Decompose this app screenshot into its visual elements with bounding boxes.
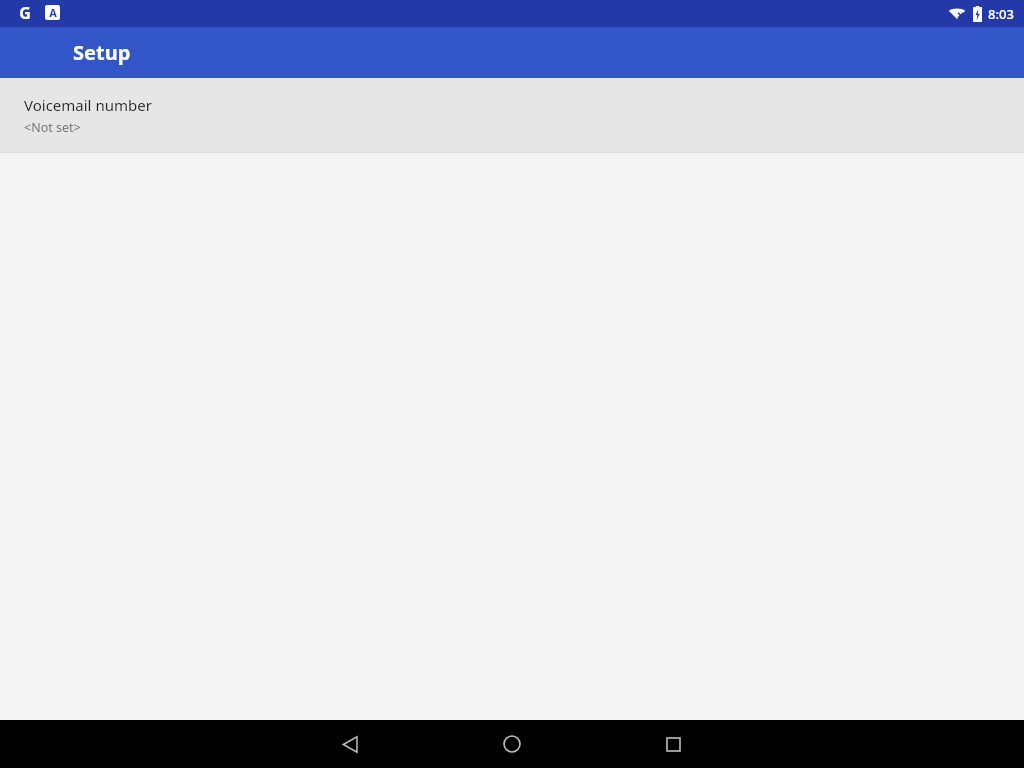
button[interactable]: Recent apps [649,720,697,768]
staticText: G [19,2,31,20]
staticText: Setup [73,39,131,66]
other: Wi-Fi disconnected [948,7,966,21]
staticText: <Not set> [24,119,81,136]
button[interactable]: Voicemail number [0,78,1024,153]
staticText: 8:03 [988,5,1014,23]
staticText: Voicemail number [24,95,152,115]
button[interactable]: Back [326,720,374,768]
button[interactable]: Home [488,720,536,768]
staticText: A [49,5,57,20]
other: Battery charging [973,6,982,22]
